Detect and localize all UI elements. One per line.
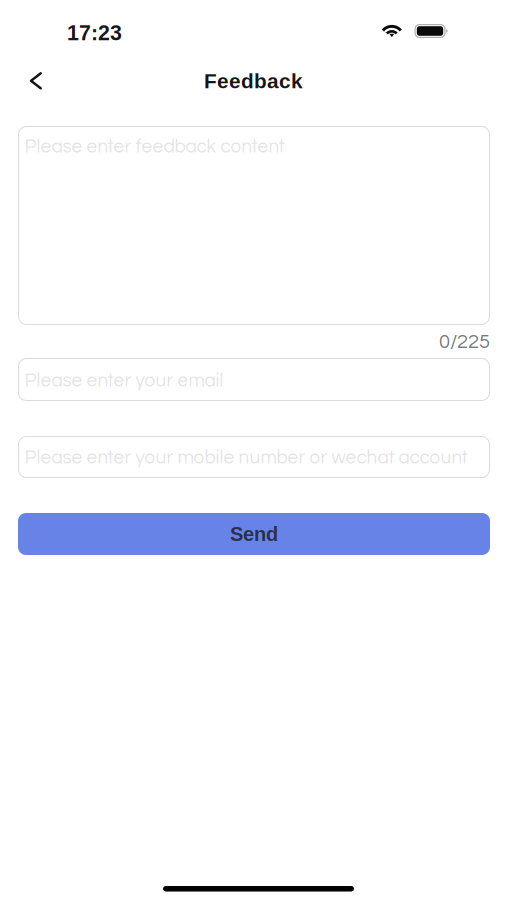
button[interactable]: Back	[14, 59, 58, 103]
staticText: Send	[230, 523, 278, 545]
button[interactable]: Send	[18, 513, 490, 555]
staticText: Please enter your email	[24, 371, 223, 390]
staticText: Please enter feedback content	[24, 137, 284, 156]
staticText: 17:23	[67, 21, 122, 45]
staticText: Feedback	[204, 69, 303, 93]
staticText: Please enter your mobile number or wecha…	[24, 448, 467, 467]
staticText: 0/225	[439, 332, 490, 352]
